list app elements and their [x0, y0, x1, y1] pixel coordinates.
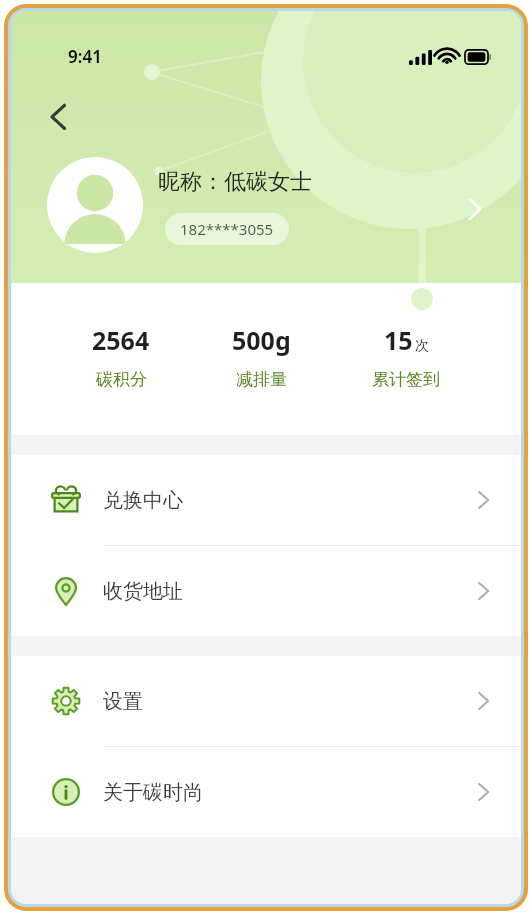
staticText: 182****3055 [180, 219, 274, 239]
staticText: 500g [232, 323, 291, 357]
staticText: 9:41 [68, 45, 102, 68]
button[interactable]: 15 [372, 323, 440, 390]
button[interactable]: 关于碳时尚 [11, 747, 521, 837]
button[interactable]: Profile details [453, 187, 497, 231]
button[interactable]: Back [39, 95, 81, 137]
staticText: 累计签到 [372, 369, 440, 390]
staticText: 设置 [103, 689, 143, 714]
button[interactable]: 2564 [92, 323, 150, 390]
button[interactable]: 500g [232, 323, 291, 390]
button[interactable]: 设置 [11, 656, 521, 746]
button[interactable]: 收货地址 [11, 546, 521, 636]
staticText: 关于碳时尚 [103, 780, 203, 805]
staticText: 15 [384, 323, 413, 357]
staticText: 碳积分 [96, 369, 147, 390]
staticText: 次 [415, 337, 429, 355]
staticText: 2564 [92, 323, 150, 357]
button[interactable]: 兑换中心 [11, 455, 521, 545]
staticText: 收货地址 [103, 579, 183, 604]
staticText: 兑换中心 [103, 488, 183, 513]
staticText: 昵称：低碳女士 [158, 168, 312, 196]
staticText: 减排量 [236, 369, 287, 390]
